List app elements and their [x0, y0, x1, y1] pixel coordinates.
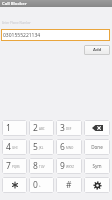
button[interactable]: 6 [56, 139, 82, 155]
button[interactable]: 4 [2, 139, 27, 155]
staticText: 9 [60, 160, 65, 172]
staticText: 6 [60, 141, 65, 153]
button[interactable]: Call Blocker [0, 0, 112, 7]
staticText: TUV [39, 165, 45, 169]
staticText: Add [93, 47, 102, 53]
button[interactable]: 8 [29, 158, 54, 174]
staticText: + [39, 184, 41, 188]
button[interactable]: 3 [56, 120, 82, 136]
staticText: DEF [66, 127, 72, 131]
button[interactable]: 0301555221134 [1, 29, 110, 41]
staticText: 2 [33, 122, 38, 134]
staticText: GHI [12, 146, 18, 150]
button[interactable]: 5 [29, 139, 54, 155]
button[interactable]: 1 [2, 120, 27, 136]
staticText: MNO [66, 146, 74, 150]
button[interactable]: Add [84, 45, 110, 55]
staticText: 3 [60, 122, 65, 134]
button[interactable] [2, 177, 27, 193]
button[interactable]: # [56, 177, 82, 193]
staticText: Enter Phone Number [2, 21, 31, 25]
staticText: Done [91, 144, 103, 150]
staticText: JKL [39, 146, 44, 150]
button[interactable]: 7 [2, 158, 27, 174]
staticText: 1 [6, 122, 11, 134]
button[interactable]: 9 [56, 158, 82, 174]
button[interactable]: Sym [84, 158, 110, 174]
staticText: WXYZ [66, 165, 74, 169]
button[interactable]: 0 [29, 177, 54, 193]
staticText: Call Blocker [2, 1, 27, 7]
staticText: 5 [33, 141, 38, 153]
staticText: Sym [92, 163, 102, 169]
button[interactable]: Backspace [84, 120, 110, 136]
staticText: 4 [6, 141, 11, 153]
button[interactable]: 2 [29, 120, 54, 136]
staticText: PQRS [12, 165, 20, 169]
staticText: 0301555221134 [3, 32, 41, 39]
staticText: 7 [6, 160, 11, 172]
staticText: # [66, 179, 72, 191]
staticText: 8 [33, 160, 38, 172]
staticText: 0 [33, 179, 38, 191]
button[interactable]: Settings [84, 177, 110, 193]
button[interactable]: Done [84, 139, 110, 155]
staticText: ABC [39, 127, 45, 131]
